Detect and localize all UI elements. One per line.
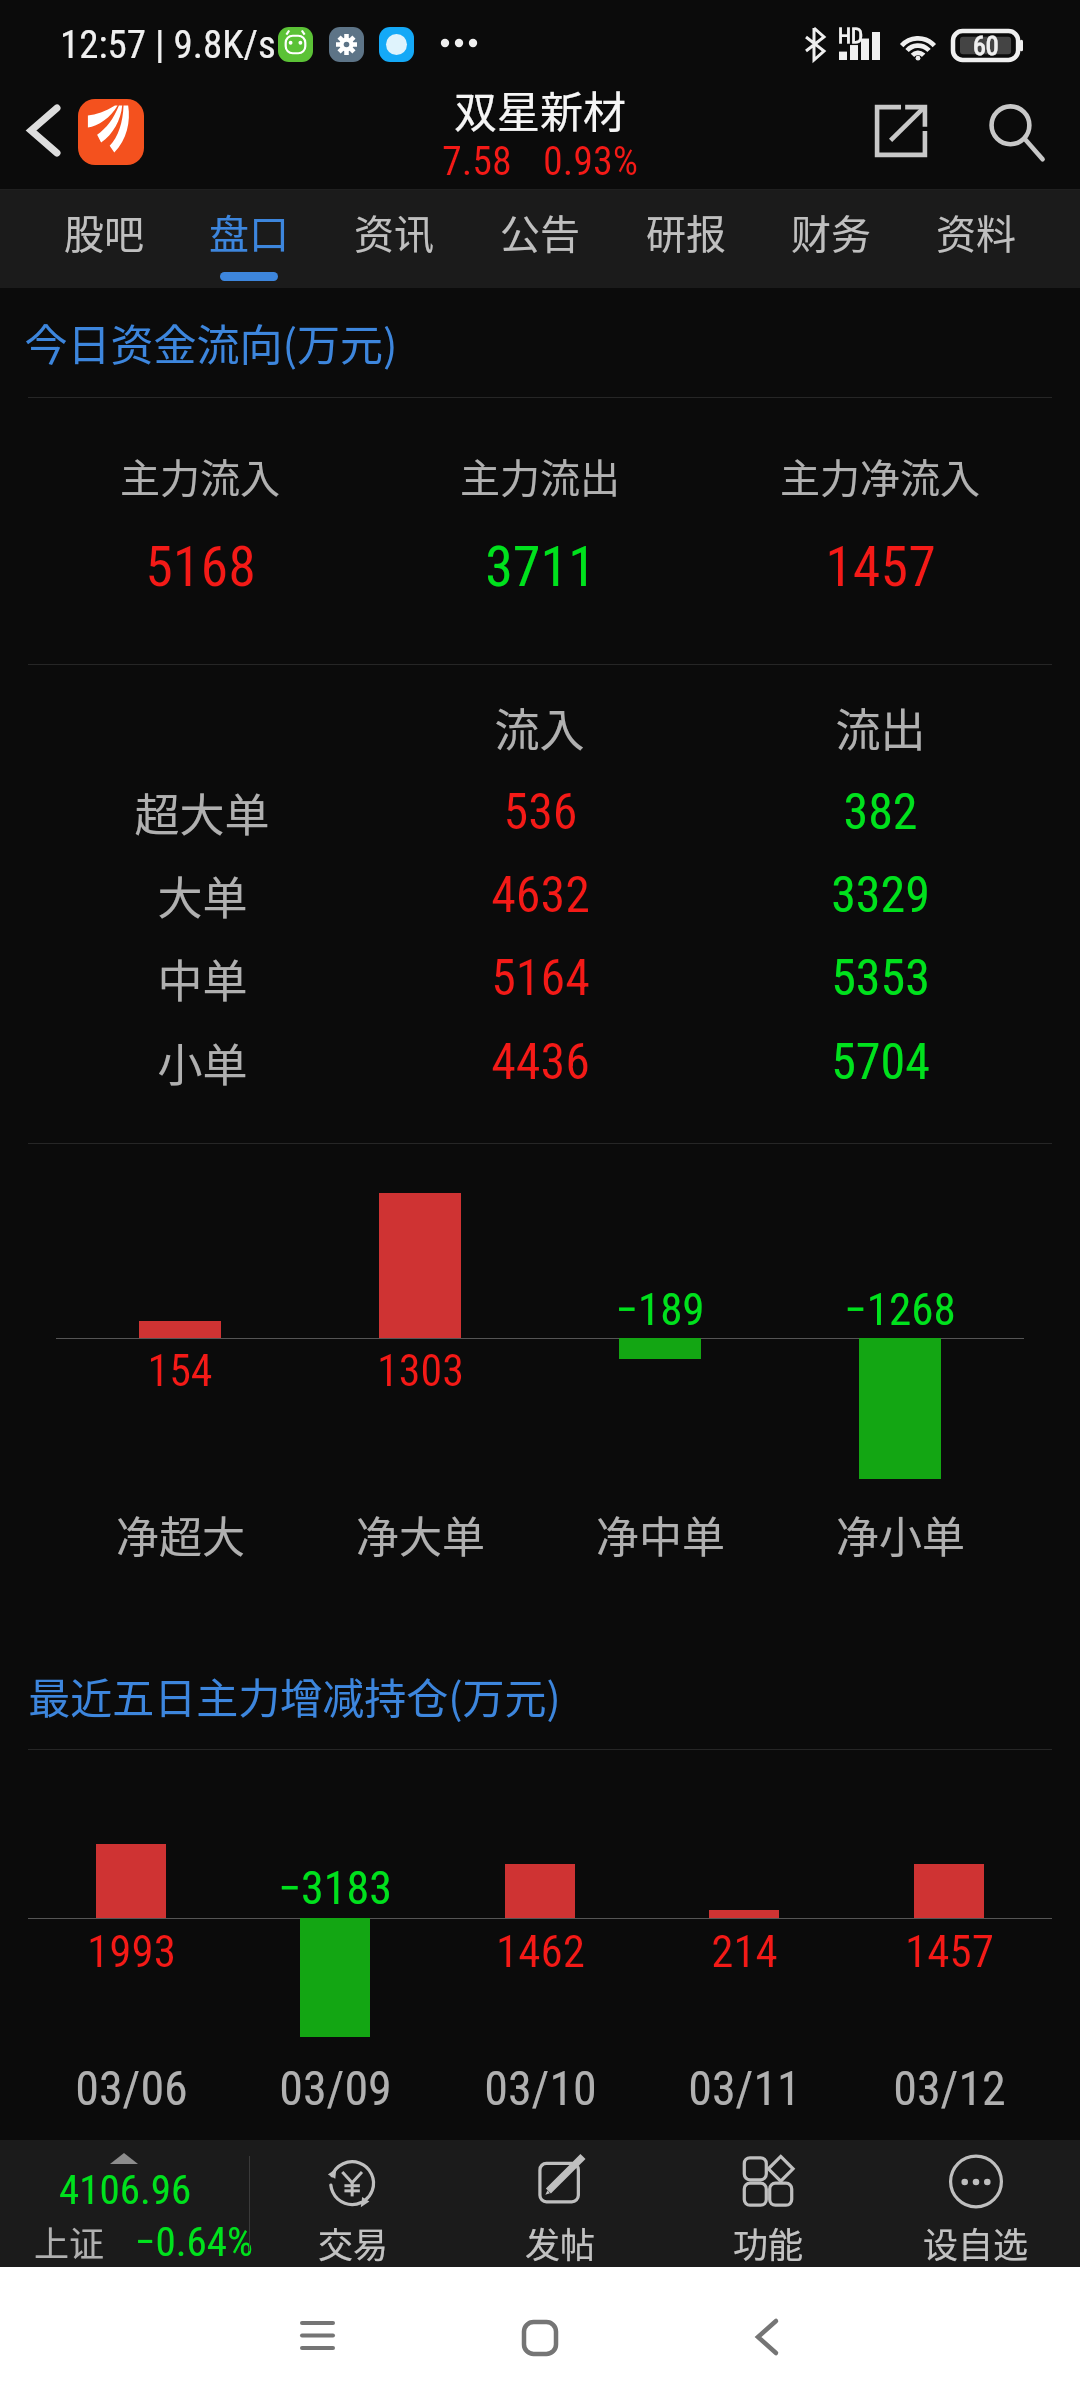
staticText: 公告 — [500, 203, 580, 261]
staticText: 03/11 — [688, 2060, 801, 2116]
staticText: 流入 — [494, 695, 585, 760]
button[interactable]: 资讯 — [322, 190, 466, 288]
staticText: −1268 — [844, 1283, 956, 1336]
staticText: 03/06 — [75, 2060, 188, 2116]
staticText: 主力流出 — [460, 447, 620, 505]
button[interactable]: 设自选 — [872, 2140, 1080, 2267]
button[interactable]: Eastmoney home — [78, 99, 144, 165]
staticText: 净大单 — [356, 1503, 485, 1565]
staticText: 3329 — [831, 866, 930, 925]
staticText: 1993 — [87, 1925, 176, 1978]
staticText: 功能 — [733, 2217, 804, 2268]
staticText: 1457 — [905, 1925, 994, 1978]
staticText: HD — [838, 24, 864, 49]
button[interactable]: Back — [657, 2267, 877, 2400]
staticText: 净小单 — [836, 1503, 965, 1565]
staticText: 382 — [843, 783, 918, 842]
staticText: 最近五日主力增减持仓(万元) — [28, 1665, 561, 1726]
button[interactable]: 公告 — [468, 190, 612, 288]
button[interactable]: 研报 — [614, 190, 758, 288]
staticText: 12:57 | 9.8K/s — [60, 22, 276, 68]
staticText: 536 — [503, 783, 578, 842]
staticText: 发帖 — [525, 2217, 596, 2268]
staticText: 盘口 — [209, 203, 289, 261]
button[interactable]: Recent apps — [207, 2267, 427, 2400]
staticText: 流出 — [835, 695, 926, 760]
staticText: 上证 — [34, 2216, 105, 2267]
staticText: 大单 — [157, 863, 248, 928]
button[interactable]: 上证指数 4106.96 −0.64% — [0, 2140, 249, 2267]
staticText: 60 — [973, 31, 999, 60]
staticText: 超大单 — [134, 780, 270, 845]
staticText: 1303 — [377, 1345, 464, 1397]
staticText: −0.64% — [135, 2218, 253, 2266]
staticText: 净中单 — [596, 1503, 725, 1565]
staticText: 03/09 — [279, 2060, 392, 2116]
staticText: 主力流入 — [120, 447, 280, 505]
staticText: 4632 — [491, 866, 590, 925]
staticText: −3183 — [278, 1861, 392, 1915]
staticText: 03/12 — [893, 2060, 1006, 2116]
staticText: 5704 — [831, 1033, 930, 1092]
staticText: 4106.96 — [59, 2166, 192, 2214]
staticText: 03/10 — [484, 2060, 597, 2116]
staticText: 1462 — [496, 1925, 585, 1978]
staticText: 设自选 — [923, 2217, 1029, 2268]
staticText: 3711 — [485, 534, 596, 600]
button[interactable]: 交易 — [250, 2140, 457, 2267]
staticText: 今日资金流向(万元) — [24, 311, 398, 373]
staticText: −189 — [615, 1283, 705, 1336]
staticText: 主力净流入 — [780, 447, 980, 505]
staticText: 1457 — [825, 534, 936, 600]
staticText: 5353 — [831, 949, 930, 1008]
button[interactable]: Share — [856, 94, 946, 184]
staticText: 7.58 — [442, 138, 512, 185]
button[interactable]: 功能 — [664, 2140, 872, 2267]
staticText: 资讯 — [354, 203, 434, 261]
button[interactable]: Search — [965, 90, 1063, 188]
staticText: 5168 — [145, 534, 256, 600]
staticText: 净超大 — [116, 1503, 245, 1565]
staticText: 154 — [147, 1345, 213, 1397]
staticText: 资料 — [936, 203, 1016, 261]
staticText: 研报 — [646, 203, 726, 261]
staticText: 双星新材 — [454, 78, 626, 140]
button[interactable]: 资料 — [904, 190, 1048, 288]
staticText: 财务 — [791, 203, 871, 261]
staticText: 5164 — [491, 949, 590, 1008]
button[interactable]: Home — [430, 2267, 650, 2400]
staticText: 0.93% — [543, 138, 639, 185]
staticText: 小单 — [157, 1030, 248, 1095]
button[interactable]: Back — [0, 94, 87, 184]
button[interactable]: 盘口 — [177, 190, 321, 288]
staticText: 214 — [711, 1925, 778, 1978]
button[interactable]: 发帖 — [457, 2140, 664, 2267]
staticText: 中单 — [157, 946, 248, 1011]
staticText: 交易 — [318, 2217, 389, 2268]
staticText: 股吧 — [64, 203, 144, 261]
button[interactable]: 股吧 — [32, 190, 176, 288]
staticText: 4436 — [491, 1033, 590, 1092]
button[interactable]: 财务 — [759, 190, 903, 288]
